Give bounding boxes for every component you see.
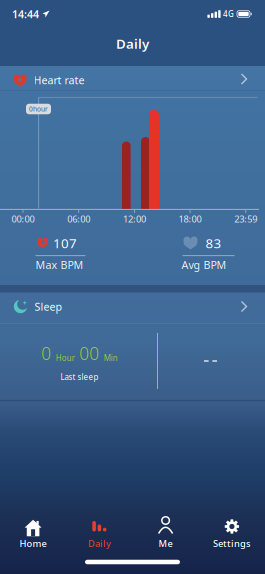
button[interactable]: Home	[4, 511, 62, 558]
staticText: 4G	[223, 9, 234, 19]
staticText: Me	[159, 537, 173, 550]
button[interactable]: Heart rate	[0, 66, 265, 90]
staticText: Sleep	[34, 299, 62, 314]
staticText: 107	[53, 234, 77, 252]
staticText: 23:59	[234, 213, 257, 225]
staticText: 0	[41, 342, 51, 365]
button[interactable]: Sleep	[0, 292, 265, 321]
staticText: 18:00	[179, 213, 202, 225]
staticText: 0hour	[29, 105, 48, 113]
staticText: 00	[79, 342, 99, 365]
staticText: Min	[104, 353, 118, 363]
staticText: 06:00	[67, 213, 90, 225]
staticText: Avg BPM	[181, 258, 226, 272]
button[interactable]: Me	[137, 511, 195, 558]
staticText: 83	[205, 234, 221, 252]
button[interactable]: Settings	[203, 511, 261, 558]
staticText: Max BPM	[35, 258, 83, 272]
staticText: Daily	[88, 537, 111, 550]
button[interactable]: Daily	[70, 511, 128, 558]
staticText: Settings	[213, 537, 251, 550]
staticText: Hour	[56, 353, 75, 363]
staticText: 14:44	[12, 7, 39, 21]
staticText: 12:00	[123, 213, 146, 225]
staticText: Daily	[116, 35, 149, 52]
staticText: Heart rate	[33, 73, 84, 87]
staticText: Last sleep	[60, 372, 98, 382]
staticText: 00:00	[11, 213, 34, 225]
staticText: Home	[20, 537, 47, 550]
